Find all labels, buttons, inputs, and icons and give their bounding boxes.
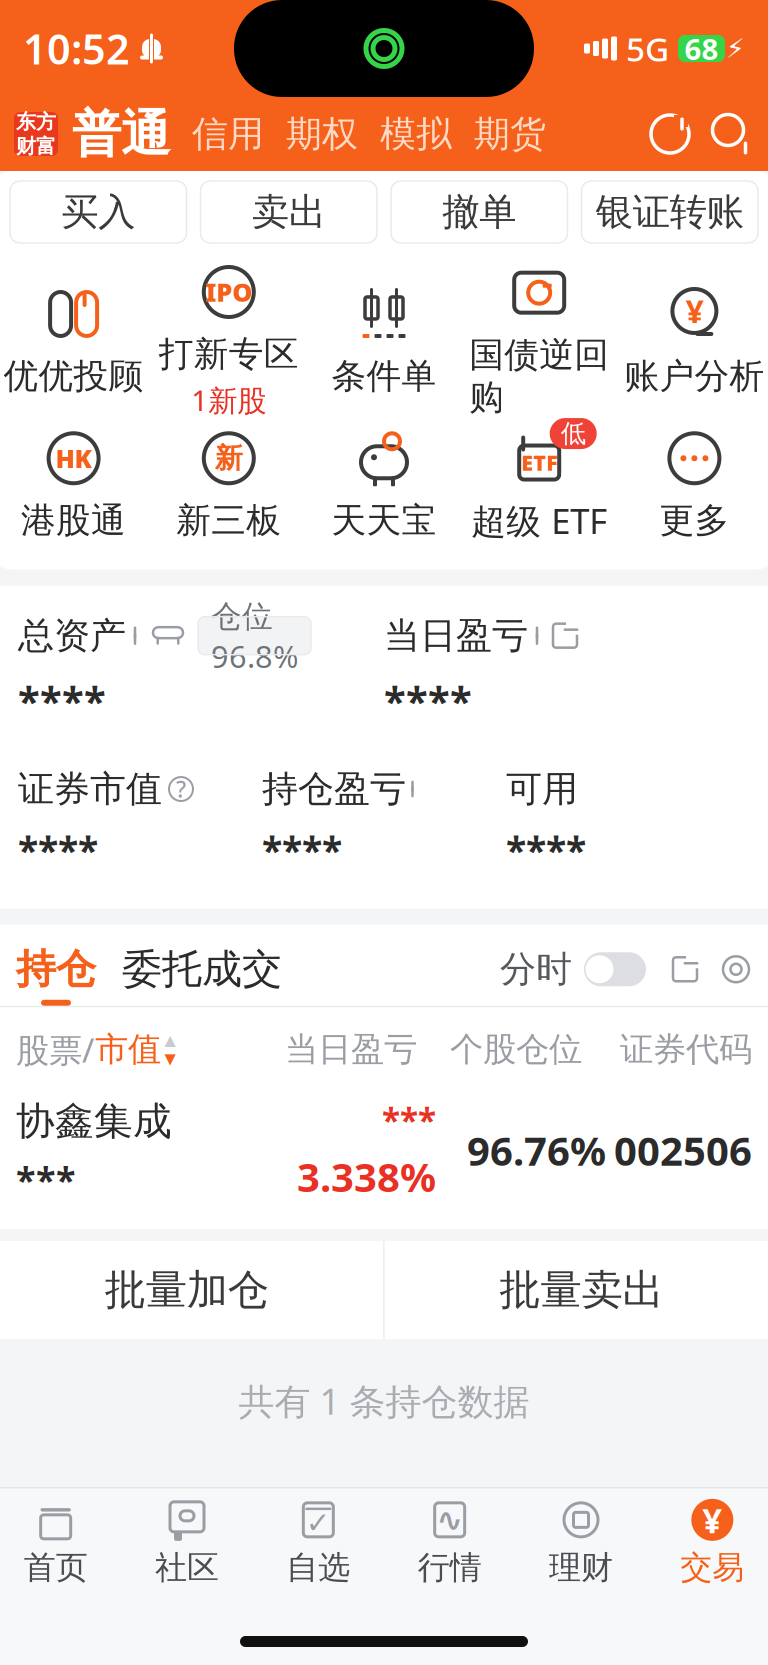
button[interactable]: 优优投顾 [0,285,151,398]
button[interactable]: ETF [462,427,617,543]
button[interactable]: 委托成交 [96,945,282,1006]
staticText: 96.76% [467,1124,606,1177]
staticText: 仓位 96.8% [211,595,298,676]
button[interactable]: Expand holdings [646,954,700,996]
button[interactable]: 天天宝 [306,429,462,542]
button[interactable]: 首页 [0,1486,121,1593]
staticText: 国债逆回购 [469,334,609,419]
button[interactable]: ∿ [384,1486,515,1593]
staticText: 期权 [286,112,358,156]
button[interactable]: ¥ [617,285,768,398]
staticText: **** [18,674,106,727]
button[interactable]: 协鑫集成 [0,1082,768,1229]
button[interactable]: 信用 [170,112,264,156]
staticText: 银证转账 [596,189,744,235]
staticText: 账户分析 [624,355,764,398]
staticText: 首页 [24,1548,88,1587]
staticText: 1新股 [191,381,266,420]
staticText: 委托成交 [122,945,282,994]
staticText: 自选 [286,1548,350,1587]
staticText: ∿ [436,1502,463,1538]
staticText: 条件单 [331,355,436,398]
button[interactable]: 国债逆回购 [462,264,617,419]
staticText: **** [262,825,342,875]
staticText: 证券代码 [620,1029,752,1070]
button[interactable]: 社区 [121,1486,253,1593]
button[interactable]: 理财 [515,1486,647,1593]
staticText: ⚡︎ [726,33,745,64]
button[interactable]: 银证转账 [581,181,758,243]
button[interactable]: Settings [700,953,752,997]
button[interactable]: 更多 [617,429,768,542]
button[interactable]: ✓ [253,1486,384,1593]
staticText: 持仓 [16,945,96,994]
staticText: 信用 [192,112,264,156]
staticText: ? [176,774,186,804]
staticText: 行情 [418,1548,482,1587]
staticText: 市值 [95,1029,161,1070]
staticText: 撤单 [442,189,516,235]
staticText: *** [16,1155,76,1203]
button[interactable]: 批量卖出 [385,1241,768,1339]
staticText: 可用 [506,767,578,811]
button[interactable]: 条件单 [306,285,462,398]
staticText: 协鑫集成 [16,1098,172,1145]
staticText: ¥ [685,290,703,332]
staticText: 总资产 [18,614,126,658]
staticText: HK [56,441,92,475]
staticText: 优优投顾 [4,355,144,398]
button[interactable]: 分时 [500,947,646,1003]
staticText: 超级 ETF [471,497,607,543]
staticText: 证券市值 [18,767,162,811]
staticText: 当日盈亏 [384,614,528,658]
button[interactable]: Search [692,112,754,156]
button[interactable]: 批量加仓 [0,1241,383,1339]
button[interactable]: 当日盈亏 [384,614,542,658]
staticText: 卖出 [252,189,326,235]
staticText: 普通 [72,104,170,164]
staticText: 天天宝 [331,499,436,542]
staticText: 新 [215,441,243,475]
button[interactable]: 新 [151,429,306,542]
staticText: 68 [684,29,718,68]
staticText: 率低至 [561,387,586,480]
button[interactable]: 持仓盈亏 [262,767,506,811]
button[interactable]: IPO [151,263,306,419]
button[interactable]: 普通 [72,104,170,164]
staticText: ▲ [164,1032,175,1048]
staticText: **** [384,674,472,727]
staticText: 新三板 [176,499,281,542]
staticText: 港股通 [21,499,126,542]
button[interactable]: Open daily profit detail [542,621,580,651]
button[interactable]: Toggle amount visibility [140,624,186,648]
staticText: **** [18,825,98,875]
staticText: *** [382,1098,436,1142]
button[interactable]: 撤单 [391,181,567,243]
staticText: 财富 [16,134,56,159]
staticText: ETF [521,448,557,477]
button[interactable]: 卖出 [200,181,377,243]
staticText: 3.338% [297,1150,436,1203]
button[interactable]: 总资产 [18,614,140,658]
staticText: ¥ [702,1497,722,1543]
staticText: 社区 [155,1548,219,1587]
staticText: 交易 [680,1548,744,1587]
staticText: 买入 [61,189,135,235]
staticText: ✓ [306,1506,331,1539]
staticText: 股票/ [16,1027,94,1072]
staticText: 持仓盈亏 [262,767,406,811]
staticText: 当日盈亏 [285,1029,417,1070]
staticText: 期货 [474,112,546,156]
button[interactable]: Refresh [648,112,692,156]
button[interactable]: 买入 [10,181,186,243]
staticText: ▼ [164,1050,175,1067]
button[interactable]: 持仓 [16,945,96,1006]
staticText: **** [506,825,586,875]
button[interactable]: HK [0,429,151,542]
button[interactable]: 股票/ [16,1027,266,1072]
button[interactable]: 模拟 [358,112,452,156]
staticText: IPO [205,275,252,309]
button[interactable]: 期货 [452,112,546,156]
button[interactable]: 期权 [264,112,358,156]
button[interactable]: ¥ [647,1486,768,1593]
